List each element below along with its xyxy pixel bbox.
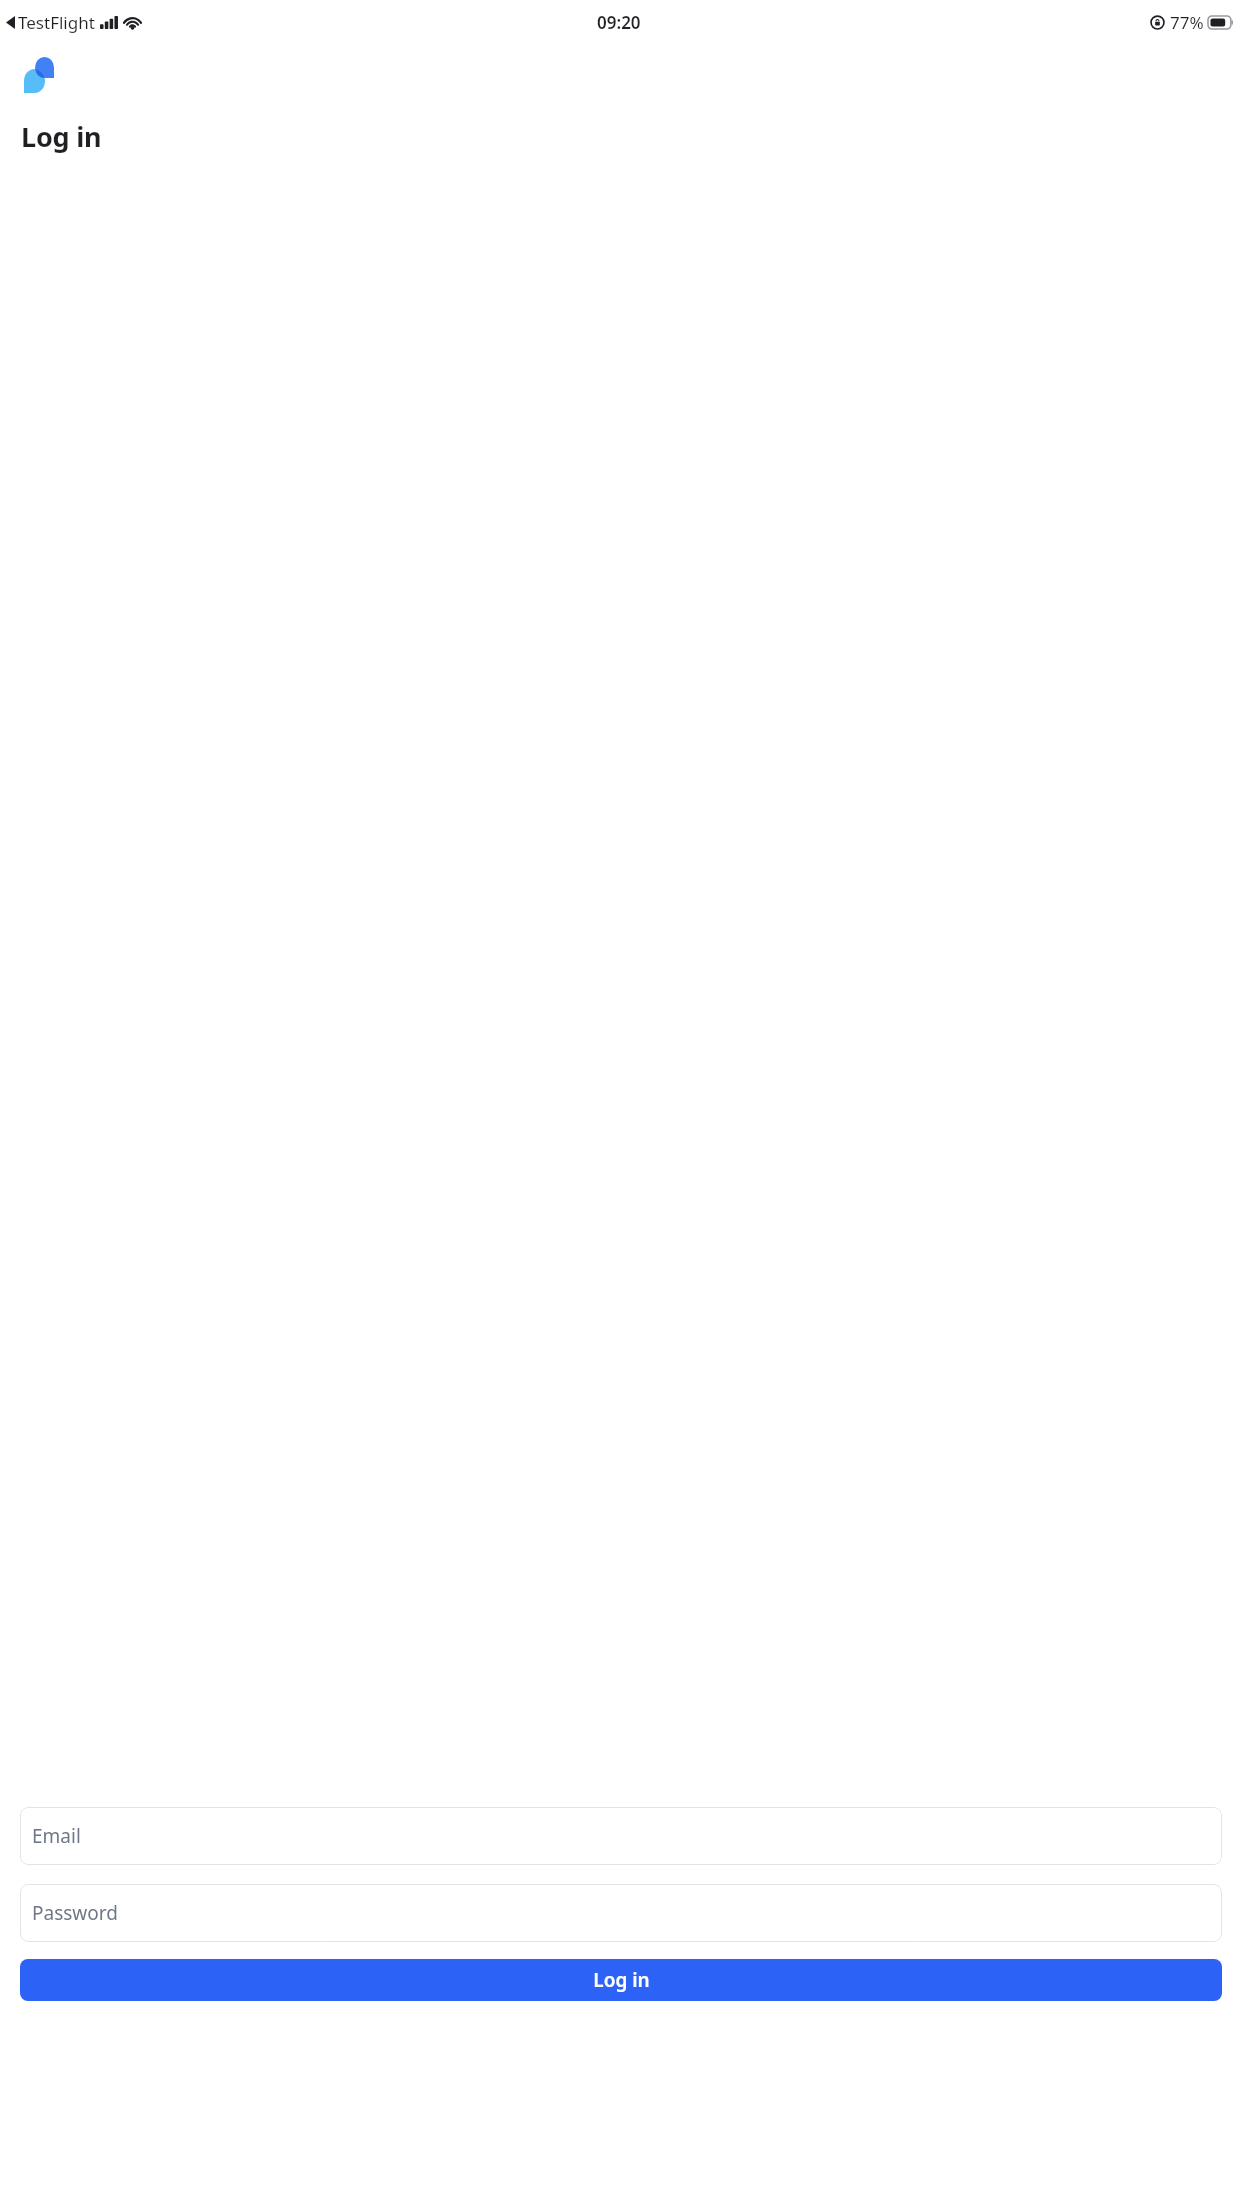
button[interactable]: Password: [20, 1884, 1222, 1942]
button[interactable]: Email: [20, 1807, 1222, 1865]
staticText: Email: [32, 1823, 81, 1849]
staticText: 09:20: [597, 11, 641, 34]
staticText: TestFlight: [18, 11, 95, 34]
button[interactable]: Log in: [20, 1959, 1222, 2001]
staticText: Password: [32, 1900, 118, 1926]
staticText: Log in: [21, 118, 102, 155]
staticText: Log in: [593, 1967, 650, 1993]
staticText: 77%: [1170, 11, 1204, 34]
